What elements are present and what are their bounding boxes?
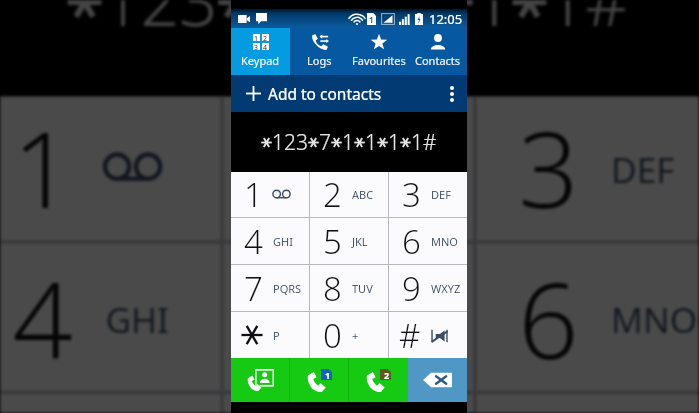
staticText: 1 <box>400 0 438 48</box>
staticText: 4 <box>13 247 73 391</box>
staticText: Logs <box>307 53 332 68</box>
staticText: 9 <box>518 397 579 413</box>
staticText: JKL <box>358 295 409 343</box>
button[interactable]: 7 <box>0 394 221 413</box>
button[interactable]: 6 <box>389 218 467 264</box>
staticText: 1 <box>13 96 73 240</box>
staticText: Contacts <box>415 53 461 68</box>
button[interactable]: 0 <box>310 312 388 358</box>
button[interactable]: 1 <box>231 172 309 217</box>
staticText: 4 <box>244 219 263 264</box>
button[interactable]: 8 <box>310 265 388 311</box>
staticText: GHI <box>105 295 169 343</box>
staticText: 1 <box>369 14 374 25</box>
staticText: 5 <box>265 247 326 391</box>
staticText: 2 <box>384 369 390 381</box>
button[interactable]: 4 <box>231 218 309 264</box>
staticText: P <box>273 328 280 343</box>
staticText: 7 <box>13 397 73 413</box>
staticText: DEF <box>431 187 451 202</box>
staticText: 1 <box>365 128 377 157</box>
button[interactable]: 1 <box>231 28 290 75</box>
button[interactable]: Favourites <box>349 28 408 75</box>
staticText: MNO <box>431 234 458 249</box>
staticText: 8 <box>265 397 326 413</box>
button[interactable]: More options <box>437 75 467 112</box>
button[interactable]: Contacts <box>408 28 467 75</box>
button[interactable]: # <box>389 312 467 358</box>
staticText: 3 <box>402 172 421 217</box>
staticText: 1 <box>325 369 331 381</box>
staticText: 2 <box>323 172 342 217</box>
button[interactable]: 3 <box>389 172 467 217</box>
button[interactable]: 9 <box>477 394 699 413</box>
staticText: # <box>399 313 421 358</box>
staticText: 1 <box>254 34 259 41</box>
staticText: Add to contacts <box>268 83 382 104</box>
staticText: 2 <box>284 128 296 157</box>
staticText: 3 <box>254 43 259 50</box>
button[interactable]: Call with SIM 2 <box>349 358 408 402</box>
button[interactable]: 6 <box>477 244 699 391</box>
staticText: 3 <box>518 96 579 240</box>
button[interactable]: P <box>231 312 309 358</box>
button[interactable]: 1 <box>0 96 221 240</box>
staticText: TUV <box>352 281 373 296</box>
staticText: 1 <box>102 0 141 48</box>
staticText: 5 <box>323 219 342 264</box>
staticText: ABC <box>358 144 429 192</box>
button[interactable]: Add to contacts <box>231 75 437 112</box>
staticText: 2 <box>141 0 179 48</box>
staticText: PQRS <box>273 281 302 296</box>
button[interactable]: Delete <box>408 358 467 402</box>
staticText: 3 <box>296 128 308 157</box>
button[interactable]: 4 <box>0 244 221 391</box>
button[interactable]: 5 <box>310 218 388 264</box>
staticText: 1 <box>388 128 400 157</box>
button[interactable]: Call with SIM 1 <box>290 358 348 402</box>
staticText: 6 <box>518 247 579 391</box>
button[interactable]: 9 <box>389 265 467 311</box>
staticText: # <box>585 0 630 48</box>
staticText: 2 <box>263 34 268 41</box>
staticText: 7 <box>253 0 291 48</box>
staticText: ABC <box>352 187 374 202</box>
staticText: # <box>423 128 437 157</box>
button[interactable]: 3 <box>477 96 699 240</box>
staticText: 6 <box>402 219 421 264</box>
staticText: WXYZ <box>431 281 461 296</box>
button[interactable]: 2 <box>224 96 473 240</box>
staticText: JKL <box>352 234 368 249</box>
staticText: 1 <box>342 128 354 157</box>
staticText: MNO <box>611 295 697 343</box>
button[interactable]: 7 <box>231 265 309 311</box>
button[interactable]: 5 <box>224 244 473 391</box>
staticText: 1 <box>473 0 512 48</box>
staticText: 3 <box>179 0 217 48</box>
staticText: 4 <box>263 43 268 50</box>
staticText: 1 <box>411 128 423 157</box>
staticText: DEF <box>611 144 675 192</box>
button[interactable]: Logs <box>290 28 349 75</box>
staticText: GHI <box>273 234 293 249</box>
staticText: Keypad <box>241 53 280 68</box>
staticText: 9 <box>402 266 421 311</box>
staticText: 8 <box>323 266 342 311</box>
staticText: 7 <box>319 128 331 157</box>
button[interactable]: Video call <box>231 358 289 402</box>
staticText: 7 <box>244 266 263 311</box>
staticText: 1 <box>244 172 263 217</box>
staticText: + <box>352 328 359 343</box>
staticText: 2 <box>265 96 326 240</box>
button[interactable]: 2 <box>310 172 388 217</box>
staticText: 1 <box>326 0 365 48</box>
staticText: 1 <box>272 128 284 157</box>
staticText: 1 <box>547 0 585 48</box>
button[interactable]: 8 <box>224 394 473 413</box>
staticText: Favourites <box>352 53 406 68</box>
staticText: 0 <box>323 313 342 358</box>
staticText: 12:05 <box>429 10 463 28</box>
